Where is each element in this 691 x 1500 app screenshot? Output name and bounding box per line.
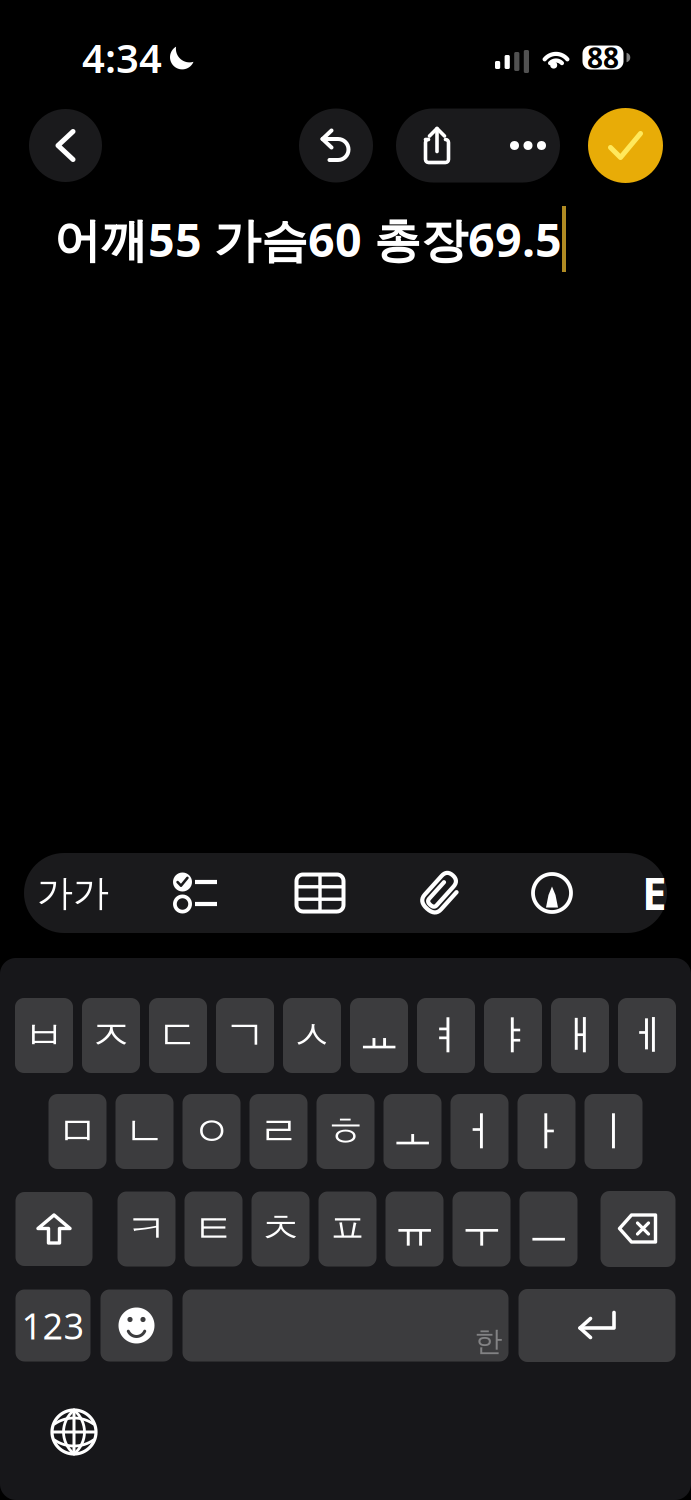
button[interactable]: ㅗ bbox=[383, 1094, 441, 1169]
button[interactable]: ㅑ bbox=[484, 998, 542, 1073]
button[interactable]: ㅋ bbox=[117, 1191, 175, 1266]
button[interactable]: Markup bbox=[520, 853, 584, 933]
staticText: ㅡ bbox=[528, 1204, 569, 1254]
button[interactable]: ㅌ bbox=[184, 1191, 242, 1266]
staticText: ㅅ bbox=[291, 1010, 332, 1061]
button[interactable]: ㅜ bbox=[452, 1191, 510, 1266]
button[interactable]: ㅔ bbox=[618, 998, 676, 1073]
staticText: ㅗ bbox=[392, 1106, 433, 1157]
staticText: ㅕ bbox=[425, 1010, 466, 1061]
button[interactable]: Attach bbox=[372, 853, 520, 933]
button[interactable]: ㅅ bbox=[283, 998, 341, 1073]
staticText: ㅎ bbox=[325, 1106, 366, 1157]
button[interactable]: ㅁ bbox=[48, 1094, 106, 1169]
staticText: 한 bbox=[474, 1324, 502, 1358]
button[interactable]: ㅎ bbox=[316, 1094, 374, 1169]
staticText: ㅐ bbox=[559, 1010, 600, 1061]
button[interactable]: Back bbox=[29, 109, 102, 182]
button[interactable]: ㅓ bbox=[450, 1094, 508, 1169]
staticText: 가가 bbox=[37, 871, 109, 915]
button[interactable]: Return bbox=[518, 1289, 675, 1362]
staticText: ㅊ bbox=[260, 1204, 301, 1254]
staticText: ㅁ bbox=[57, 1106, 98, 1157]
button[interactable]: More bbox=[478, 108, 560, 182]
staticText: 88 bbox=[587, 39, 619, 76]
button[interactable]: Shift bbox=[15, 1192, 92, 1266]
staticText: E bbox=[642, 864, 667, 922]
staticText: 123 bbox=[21, 1302, 84, 1349]
button[interactable]: ㄹ bbox=[249, 1094, 307, 1169]
staticText: ㄷ bbox=[157, 1010, 198, 1061]
button[interactable]: ㅈ bbox=[82, 998, 140, 1073]
staticText: ㅍ bbox=[327, 1204, 368, 1254]
staticText: ㅂ bbox=[23, 1010, 64, 1061]
staticText: ㅜ bbox=[461, 1204, 502, 1254]
button[interactable]: Undo bbox=[299, 108, 373, 182]
staticText: ㄴ bbox=[124, 1106, 165, 1157]
staticText: ㅈ bbox=[90, 1010, 131, 1061]
button[interactable]: ㅍ bbox=[318, 1191, 376, 1266]
button[interactable]: Text style bbox=[24, 853, 122, 933]
button[interactable]: ㅂ bbox=[15, 998, 73, 1073]
button[interactable]: Checklist bbox=[122, 853, 268, 933]
staticText: ㅇ bbox=[191, 1106, 232, 1157]
staticText: ㅌ bbox=[193, 1204, 234, 1254]
button[interactable]: Table bbox=[268, 853, 372, 933]
staticText: ㅠ bbox=[394, 1204, 435, 1254]
staticText: ㄱ bbox=[224, 1010, 265, 1061]
staticText: 4:34 bbox=[82, 31, 162, 84]
button[interactable]: Share bbox=[396, 108, 478, 182]
button[interactable]: ㅣ bbox=[584, 1094, 642, 1169]
button[interactable]: 123 bbox=[15, 1289, 90, 1361]
button[interactable]: ㅕ bbox=[417, 998, 475, 1073]
button[interactable]: ㅊ bbox=[251, 1191, 309, 1266]
button[interactable]: ㅐ bbox=[551, 998, 609, 1073]
staticText: ㅛ bbox=[358, 1010, 399, 1061]
button[interactable]: ㅛ bbox=[350, 998, 408, 1073]
staticText: ㅑ bbox=[492, 1010, 533, 1061]
staticText: ㄹ bbox=[258, 1106, 299, 1157]
staticText: ㅋ bbox=[126, 1204, 167, 1254]
staticText: ㅣ bbox=[593, 1106, 634, 1157]
button[interactable]: Switch keyboard bbox=[42, 1400, 106, 1464]
button[interactable]: ㅠ bbox=[385, 1191, 443, 1266]
button[interactable]: ㄷ bbox=[149, 998, 207, 1073]
staticText: ㅔ bbox=[626, 1010, 667, 1061]
button[interactable]: ㅇ bbox=[182, 1094, 240, 1169]
staticText: 어깨55 가슴60 총장69.5 bbox=[54, 208, 562, 270]
button[interactable]: Done bbox=[588, 108, 663, 183]
staticText: ㅓ bbox=[459, 1106, 500, 1157]
staticText: ㅏ bbox=[526, 1106, 567, 1157]
button[interactable]: Backspace bbox=[600, 1191, 675, 1267]
button[interactable]: Emoji bbox=[100, 1289, 172, 1361]
button[interactable]: ㄴ bbox=[115, 1094, 173, 1169]
button[interactable]: Space bbox=[182, 1289, 508, 1361]
button[interactable]: ㄱ bbox=[216, 998, 274, 1073]
button[interactable]: ㅡ bbox=[519, 1191, 577, 1266]
button[interactable]: ㅏ bbox=[517, 1094, 575, 1169]
